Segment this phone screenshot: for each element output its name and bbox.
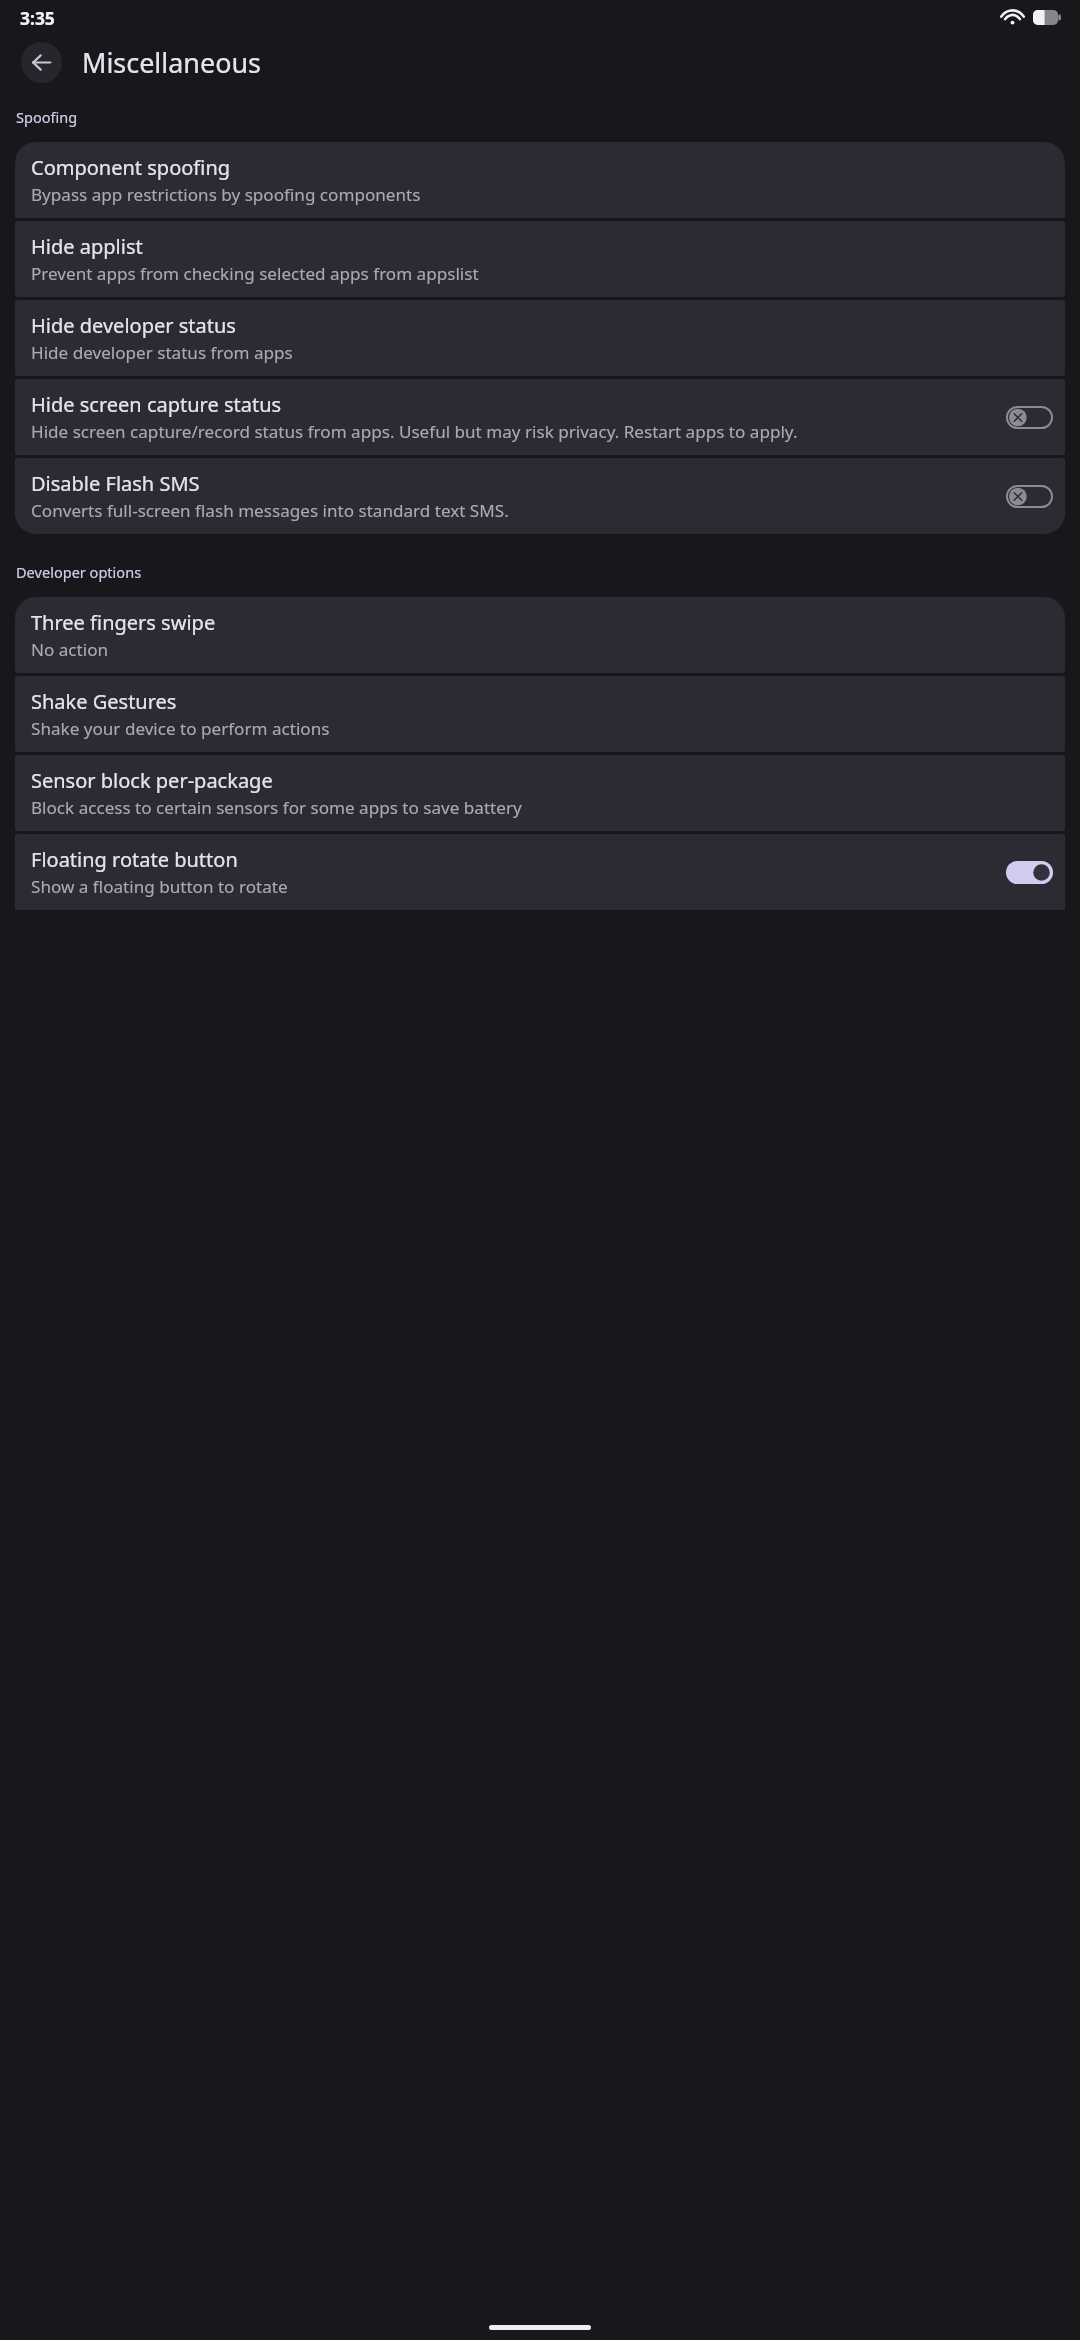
staticText: Sensor block per-package bbox=[31, 767, 273, 794]
staticText: Miscellaneous bbox=[82, 44, 262, 81]
staticText: Disable Flash SMS bbox=[31, 470, 200, 497]
staticText: Converts full-screen flash messages into… bbox=[31, 499, 509, 522]
staticText: Hide applist bbox=[31, 233, 143, 260]
staticText: Block access to certain sensors for some… bbox=[31, 796, 522, 819]
staticText: No action bbox=[31, 638, 109, 661]
staticText: 3:35 bbox=[20, 6, 55, 30]
staticText: Prevent apps from checking selected apps… bbox=[31, 262, 479, 285]
staticText: Hide developer status from apps bbox=[31, 341, 293, 364]
button[interactable]: Three fingers swipe bbox=[15, 597, 1065, 673]
staticText: Hide screen capture status bbox=[31, 391, 282, 418]
button[interactable]: Back bbox=[21, 42, 62, 83]
staticText: Floating rotate button bbox=[31, 846, 238, 873]
button[interactable]: Sensor block per-package bbox=[15, 755, 1065, 831]
staticText: Shake your device to perform actions bbox=[31, 717, 330, 740]
button[interactable]: Hide screen capture status bbox=[15, 379, 1065, 455]
staticText: Hide developer status bbox=[31, 312, 236, 339]
staticText: Developer options bbox=[16, 562, 142, 582]
button[interactable]: Hide applist bbox=[15, 221, 1065, 297]
other: Toggle bbox=[1006, 406, 1053, 429]
button[interactable]: Component spoofing bbox=[15, 142, 1065, 218]
button[interactable]: Floating rotate button bbox=[15, 834, 1065, 910]
other: Toggle bbox=[1006, 861, 1053, 884]
staticText: Component spoofing bbox=[31, 154, 231, 181]
staticText: Shake Gestures bbox=[31, 688, 177, 715]
staticText: Three fingers swipe bbox=[31, 609, 216, 636]
staticText: Show a floating button to rotate bbox=[31, 875, 288, 898]
staticText: Spoofing bbox=[16, 107, 78, 127]
staticText: Hide screen capture/record status from a… bbox=[31, 420, 798, 443]
staticText: Bypass app restrictions by spoofing comp… bbox=[31, 183, 421, 206]
other: Toggle bbox=[1006, 485, 1053, 508]
button[interactable]: Hide developer status bbox=[15, 300, 1065, 376]
button[interactable]: Shake Gestures bbox=[15, 676, 1065, 752]
button[interactable]: Disable Flash SMS bbox=[15, 458, 1065, 534]
